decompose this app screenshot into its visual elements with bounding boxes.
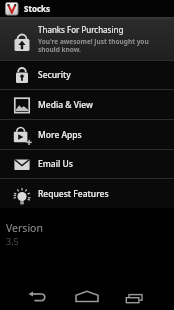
button[interactable] — [120, 286, 148, 308]
button[interactable]: Request Features — [0, 179, 174, 208]
button[interactable] — [73, 286, 101, 308]
staticText: Thanks For Purchasing — [38, 24, 124, 35]
button[interactable]: Thanks For Purchasing — [0, 17, 174, 60]
staticText: Stocks — [24, 3, 50, 14]
staticText: Version — [6, 221, 43, 235]
button[interactable]: Version — [6, 221, 174, 247]
staticText: More Apps — [38, 129, 82, 141]
staticText: Security — [38, 69, 71, 81]
button[interactable]: Security — [0, 61, 174, 89]
staticText: Email Us — [38, 158, 73, 170]
button[interactable]: More Apps — [0, 120, 174, 149]
button[interactable] — [24, 286, 52, 308]
staticText: 3.5 — [6, 235, 19, 247]
button[interactable]: Media & View — [0, 90, 174, 119]
staticText: Request Features — [38, 188, 109, 200]
button[interactable] — [5, 2, 19, 16]
staticText: Media & View — [38, 99, 93, 111]
staticText: You're awesome! Just thought you should … — [38, 37, 149, 54]
button[interactable]: Email Us — [0, 150, 174, 178]
